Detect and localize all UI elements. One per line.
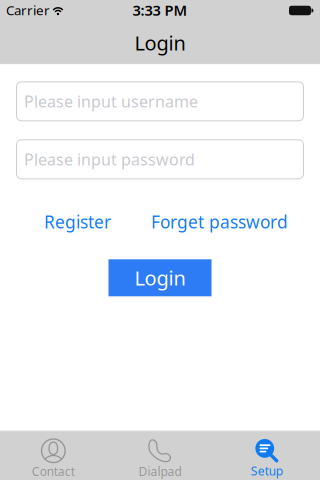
button[interactable]: Dialpad [107, 438, 213, 479]
staticText: Please input username [24, 91, 198, 112]
button[interactable]: Register [44, 210, 111, 233]
staticText: Carrier [6, 1, 50, 19]
button[interactable]: Please input username [16, 81, 304, 121]
staticText: Login [134, 29, 185, 56]
button[interactable]: Login [108, 259, 211, 296]
staticText: Please input password [24, 149, 195, 170]
button[interactable]: Contact [0, 438, 107, 479]
staticText: Contact [32, 463, 75, 479]
button[interactable]: Forget password [151, 210, 288, 233]
staticText: Forget password [151, 210, 288, 233]
staticText: 3:33 PM [132, 0, 187, 20]
staticText: Setup [251, 463, 283, 479]
staticText: Register [44, 210, 111, 233]
staticText: Dialpad [138, 463, 181, 479]
button[interactable]: Please input password [16, 139, 304, 179]
staticText: Login [134, 264, 185, 291]
button[interactable]: Setup [213, 439, 320, 479]
